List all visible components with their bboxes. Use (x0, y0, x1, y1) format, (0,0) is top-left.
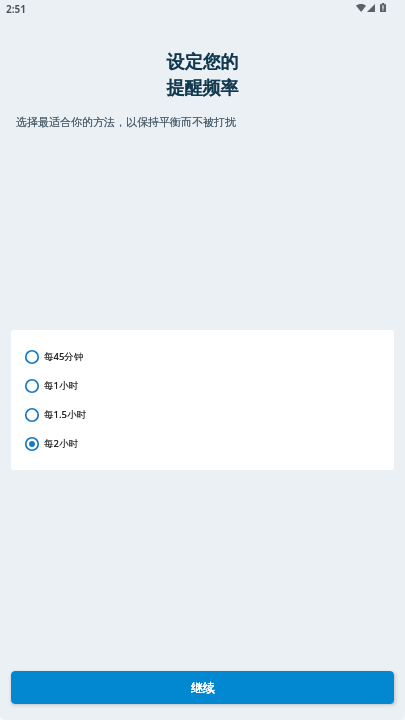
other: Mobile signal (367, 4, 375, 12)
staticText: 每45分钟 (44, 350, 84, 363)
staticText: 继续 (191, 680, 215, 695)
staticText: 选择最适合你的方法，以保持平衡而不被打扰 (16, 115, 236, 129)
staticText: 设定您的 提醒频率 (0, 51, 405, 99)
staticText: 每1小时 (44, 379, 78, 392)
button[interactable]: 每45分钟 (11, 342, 394, 371)
staticText: 继续 (191, 680, 215, 695)
button[interactable]: 每1小时 (11, 371, 394, 400)
other: Wi-Fi signal (356, 4, 366, 12)
staticText: 每1.5小时 (44, 408, 86, 421)
staticText: 每2小时 (44, 437, 78, 450)
button[interactable]: 每2小时 (11, 429, 394, 458)
other: Battery (380, 3, 386, 12)
staticText: 每45分钟 (44, 350, 84, 363)
button[interactable]: 继续 (11, 671, 394, 704)
staticText: 选择最适合你的方法，以保持平衡而不被打扰 (16, 115, 236, 129)
staticText: 设定您的 提醒频率 (0, 51, 405, 99)
staticText: 每2小时 (44, 437, 78, 450)
button[interactable]: 每1.5小时 (11, 400, 394, 429)
staticText: 每1.5小时 (44, 408, 86, 421)
staticText: 2:51 (6, 2, 26, 16)
staticText: 每1小时 (44, 379, 78, 392)
